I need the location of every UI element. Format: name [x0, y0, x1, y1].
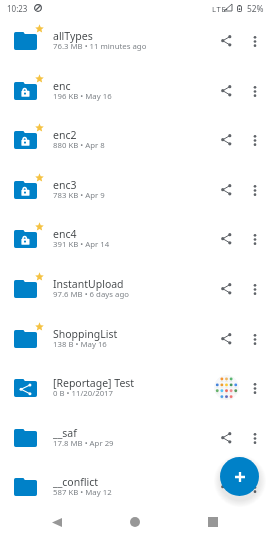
- button[interactable]: More options: [243, 214, 266, 264]
- staticText: enc4: [53, 227, 215, 241]
- button[interactable]: More options: [243, 314, 266, 364]
- button[interactable]: More options: [243, 16, 266, 66]
- staticText: LTE: [212, 4, 227, 14]
- button[interactable]: [Reportage] Test: [0, 363, 270, 413]
- button[interactable]: Share: [213, 15, 239, 65]
- staticText: 97.6 MB • 6 days ago: [53, 289, 215, 300]
- button[interactable]: More options: [243, 264, 266, 314]
- staticText: 10:23: [7, 3, 28, 14]
- staticText: ShoppingList: [53, 327, 215, 341]
- button[interactable]: Share: [213, 213, 239, 263]
- button[interactable]: enc: [0, 66, 270, 116]
- button[interactable]: Share: [213, 313, 239, 363]
- button[interactable]: enc3: [0, 165, 270, 215]
- staticText: 196 KB • May 16: [53, 91, 215, 102]
- button[interactable]: Back: [42, 515, 72, 529]
- button[interactable]: Shared with apps: [213, 362, 239, 412]
- staticText: 783 KB • Apr 9: [53, 190, 215, 201]
- button[interactable]: More options: [243, 66, 266, 116]
- staticText: 52%: [247, 3, 264, 14]
- staticText: enc2: [53, 128, 215, 142]
- button[interactable]: More options: [243, 413, 266, 463]
- staticText: __saf: [53, 426, 215, 440]
- staticText: enc3: [53, 178, 215, 192]
- button[interactable]: More options: [243, 115, 266, 165]
- button[interactable]: More options: [243, 363, 266, 413]
- staticText: 17.8 MB • Apr 29: [53, 438, 215, 449]
- button[interactable]: More options: [243, 165, 266, 215]
- staticText: allTypes: [53, 29, 215, 43]
- staticText: 880 KB • Apr 8: [53, 140, 215, 151]
- button[interactable]: enc2: [0, 115, 270, 165]
- staticText: enc: [53, 79, 215, 93]
- button[interactable]: Share: [213, 164, 239, 214]
- button[interactable]: Add: [220, 457, 259, 496]
- button[interactable]: InstantUpload: [0, 264, 270, 314]
- button[interactable]: allTypes: [0, 16, 270, 66]
- button[interactable]: ShoppingList: [0, 314, 270, 364]
- button[interactable]: Home: [120, 515, 150, 529]
- button[interactable]: enc4: [0, 214, 270, 264]
- other: Do not disturb: [34, 4, 42, 12]
- button[interactable]: More options: [243, 462, 266, 512]
- staticText: 76.3 MB • 11 minutes ago: [53, 41, 215, 52]
- staticText: 587 KB • May 12: [53, 487, 215, 498]
- button[interactable]: Share: [213, 263, 239, 313]
- button[interactable]: Share: [213, 461, 239, 511]
- button[interactable]: __conflict: [0, 462, 270, 512]
- staticText: __conflict: [53, 475, 215, 489]
- staticText: InstantUpload: [53, 277, 215, 291]
- staticText: 138 B • May 16: [53, 339, 215, 350]
- staticText: 391 KB • Apr 14: [53, 239, 215, 250]
- button[interactable]: __saf: [0, 413, 270, 463]
- button[interactable]: Share: [213, 114, 239, 164]
- button[interactable]: Share: [213, 65, 239, 115]
- button[interactable]: Share: [213, 412, 239, 462]
- staticText: [Reportage] Test: [53, 376, 215, 390]
- button[interactable]: Recents: [198, 515, 228, 529]
- staticText: 0 B • 11/20/2017: [53, 388, 215, 399]
